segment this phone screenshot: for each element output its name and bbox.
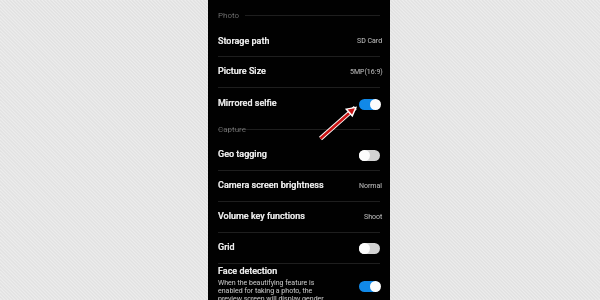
staticText: Storage path: [218, 36, 354, 47]
button[interactable]: Switch off: [359, 149, 380, 161]
button[interactable]: Switch on: [359, 280, 380, 292]
button[interactable]: Mirrored selfie: [208, 88, 390, 119]
staticText: Picture Size: [218, 66, 347, 77]
button[interactable]: Geo tagging: [208, 139, 390, 170]
staticText: Photo: [218, 11, 240, 20]
staticText: When the beautifying feature is enabled …: [218, 279, 324, 300]
button[interactable]: Camera screen brightness: [208, 170, 390, 201]
staticText: Volume key functions: [218, 211, 361, 222]
staticText: Face detection: [218, 266, 278, 277]
staticText: Capture: [218, 125, 246, 134]
button[interactable]: Storage path: [208, 26, 390, 56]
button[interactable]: Grid: [208, 232, 390, 263]
staticText: Mirrored selfie: [218, 98, 359, 109]
button[interactable]: Switch on: [359, 98, 380, 110]
staticText: Shoot: [364, 213, 383, 221]
staticText: Normal: [359, 182, 383, 190]
staticText: Geo tagging: [218, 149, 359, 160]
staticText: Camera screen brightness: [218, 180, 356, 191]
staticText: Grid: [218, 242, 359, 253]
button[interactable]: Switch off: [359, 242, 380, 254]
staticText: SD Card: [357, 37, 383, 45]
button[interactable]: Picture Size: [208, 56, 390, 87]
button[interactable]: Face detection: [208, 264, 390, 300]
staticText: 5MP(16:9): [350, 68, 383, 76]
button[interactable]: Volume key functions: [208, 201, 390, 232]
